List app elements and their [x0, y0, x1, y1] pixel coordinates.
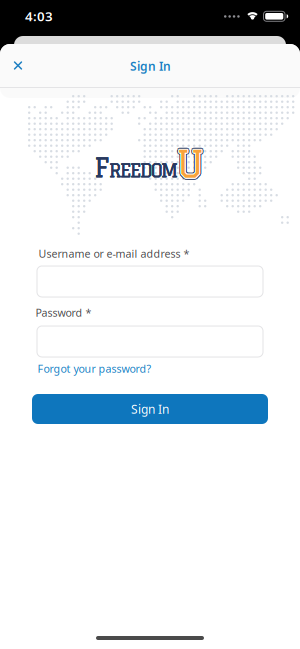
staticText: F [94, 153, 109, 182]
staticText: 4:03 [25, 7, 53, 25]
staticText: U [175, 142, 203, 185]
staticText: U [177, 142, 205, 185]
staticText: REEDOM [108, 159, 178, 181]
button[interactable]: Sign In [32, 394, 268, 424]
staticText: U [176, 144, 204, 187]
staticText: U [177, 141, 205, 184]
staticText: U [178, 144, 206, 186]
staticText: U [176, 140, 204, 183]
staticText: U [175, 144, 203, 186]
staticText: U [174, 142, 202, 185]
staticText: Sign In [131, 401, 169, 417]
staticText: Username or e-mail address * [38, 246, 189, 261]
staticText: U [178, 141, 206, 183]
staticText: Password * [35, 305, 91, 320]
button[interactable]: Forgot your password? [37, 361, 151, 376]
staticText: U [176, 143, 204, 186]
staticText: F [94, 153, 109, 182]
staticText: U [176, 141, 204, 184]
staticText: U [177, 143, 205, 185]
staticText: Sign In [130, 58, 171, 74]
staticText: REEDOM [108, 160, 178, 181]
staticText: U [176, 143, 204, 185]
staticText: U [175, 141, 203, 183]
textField[interactable]: Password [37, 326, 263, 356]
staticText: F [94, 153, 109, 182]
staticText: U [176, 142, 204, 185]
button[interactable]: Close [1, 48, 35, 82]
textField[interactable]: Username or e-mail address [37, 266, 263, 296]
staticText: Forgot your password? [37, 361, 151, 376]
staticText: REEDOM [109, 159, 179, 181]
staticText: U [176, 141, 204, 184]
staticText: U [178, 142, 206, 185]
